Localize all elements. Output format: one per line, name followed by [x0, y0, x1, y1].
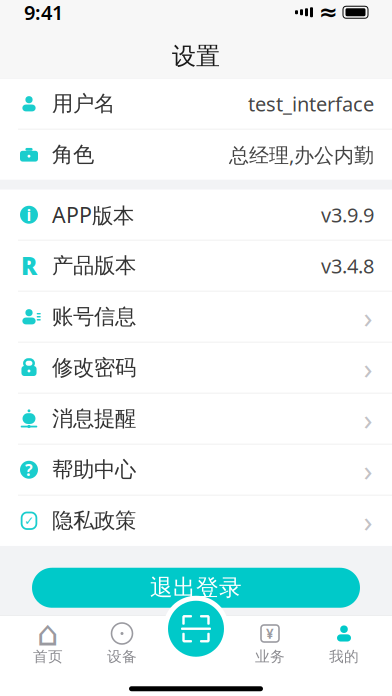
- staticText: R: [21, 250, 37, 282]
- staticText: 用户名: [52, 91, 115, 117]
- staticText: 消息提醒: [52, 406, 136, 432]
- button[interactable]: ⌂: [11, 618, 85, 670]
- staticText: 首页: [33, 647, 63, 665]
- staticText: 帮助中心: [52, 457, 136, 483]
- staticText: test_interface: [248, 90, 374, 117]
- staticText: ›: [363, 348, 372, 387]
- staticText: 我的: [329, 647, 359, 665]
- staticText: ?: [25, 459, 33, 480]
- staticText: 9:41: [24, 0, 63, 26]
- staticText: 退出登录: [150, 574, 242, 602]
- staticText: i: [26, 204, 31, 225]
- staticText: v3.9.9: [321, 201, 374, 228]
- staticText: 账号信息: [52, 304, 136, 330]
- button[interactable]: 退出登录: [32, 568, 360, 608]
- staticText: 业务: [255, 647, 285, 665]
- staticText: ›: [363, 501, 372, 540]
- button[interactable]: ✓: [0, 496, 392, 546]
- staticText: APP版本: [52, 200, 134, 229]
- button[interactable]: 我的: [307, 618, 381, 670]
- button[interactable]: 修改密码: [0, 343, 392, 393]
- button[interactable]: ?: [0, 445, 392, 495]
- staticText: 总经理,办公内勤: [229, 141, 374, 168]
- staticText: ⌂: [37, 614, 59, 653]
- staticText: 隐私政策: [52, 508, 136, 534]
- staticText: ≈: [319, 0, 338, 25]
- staticText: ›: [363, 450, 372, 489]
- staticText: 设置: [172, 41, 220, 71]
- button[interactable]: 账号信息: [0, 292, 392, 342]
- button[interactable]: 消息提醒: [0, 394, 392, 444]
- staticText: ¥: [266, 625, 274, 642]
- staticText: 角色: [52, 142, 94, 168]
- staticText: 设备: [107, 647, 137, 665]
- staticText: ✓: [24, 514, 34, 527]
- staticText: 产品版本: [52, 253, 136, 279]
- staticText: 修改密码: [52, 355, 136, 381]
- staticText: ›: [363, 399, 372, 438]
- staticText: ›: [363, 297, 372, 336]
- button[interactable]: Scan: [163, 596, 229, 662]
- staticText: v3.4.8: [321, 252, 374, 279]
- button[interactable]: 设备: [85, 618, 159, 670]
- button[interactable]: ¥: [233, 618, 307, 670]
